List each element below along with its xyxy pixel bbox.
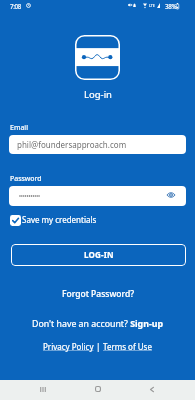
- staticText: 7:08: [10, 2, 21, 10]
- staticText: Save my credentials: [22, 214, 97, 225]
- button[interactable]: LOG-IN: [11, 244, 186, 266]
- staticText: Log-in: [84, 88, 112, 101]
- button[interactable]: Back: [136, 379, 167, 399]
- staticText: |: [96, 341, 101, 352]
- staticText: Password: [10, 174, 42, 184]
- staticText: Forgot Password?: [62, 288, 134, 300]
- staticText: Terms of Use: [103, 341, 152, 352]
- staticText: Email: [10, 123, 28, 133]
- button[interactable]: Privacy Policy: [41, 339, 96, 354]
- button[interactable]: Show password: [9, 186, 186, 206]
- button[interactable]: Save my credentials: [10, 214, 98, 227]
- staticText: LTE: [149, 3, 155, 8]
- button[interactable]: Forgot Password?: [56, 286, 140, 302]
- button[interactable]: Recents: [27, 379, 58, 399]
- staticText: LOG-IN: [84, 249, 114, 260]
- button[interactable]: Don't have an account? Sign-up: [26, 316, 169, 332]
- button[interactable]: Terms of Use: [101, 339, 154, 354]
- staticText: phil@foundersapproach.com: [17, 139, 127, 150]
- button[interactable]: Home: [82, 379, 113, 399]
- button[interactable]: phil@foundersapproach.com: [9, 135, 186, 154]
- staticText: 38%: [165, 2, 177, 10]
- staticText: Privacy Policy: [43, 341, 94, 352]
- button[interactable]: Show password: [159, 186, 183, 205]
- staticText: Don't have an account? Sign-up: [32, 318, 163, 330]
